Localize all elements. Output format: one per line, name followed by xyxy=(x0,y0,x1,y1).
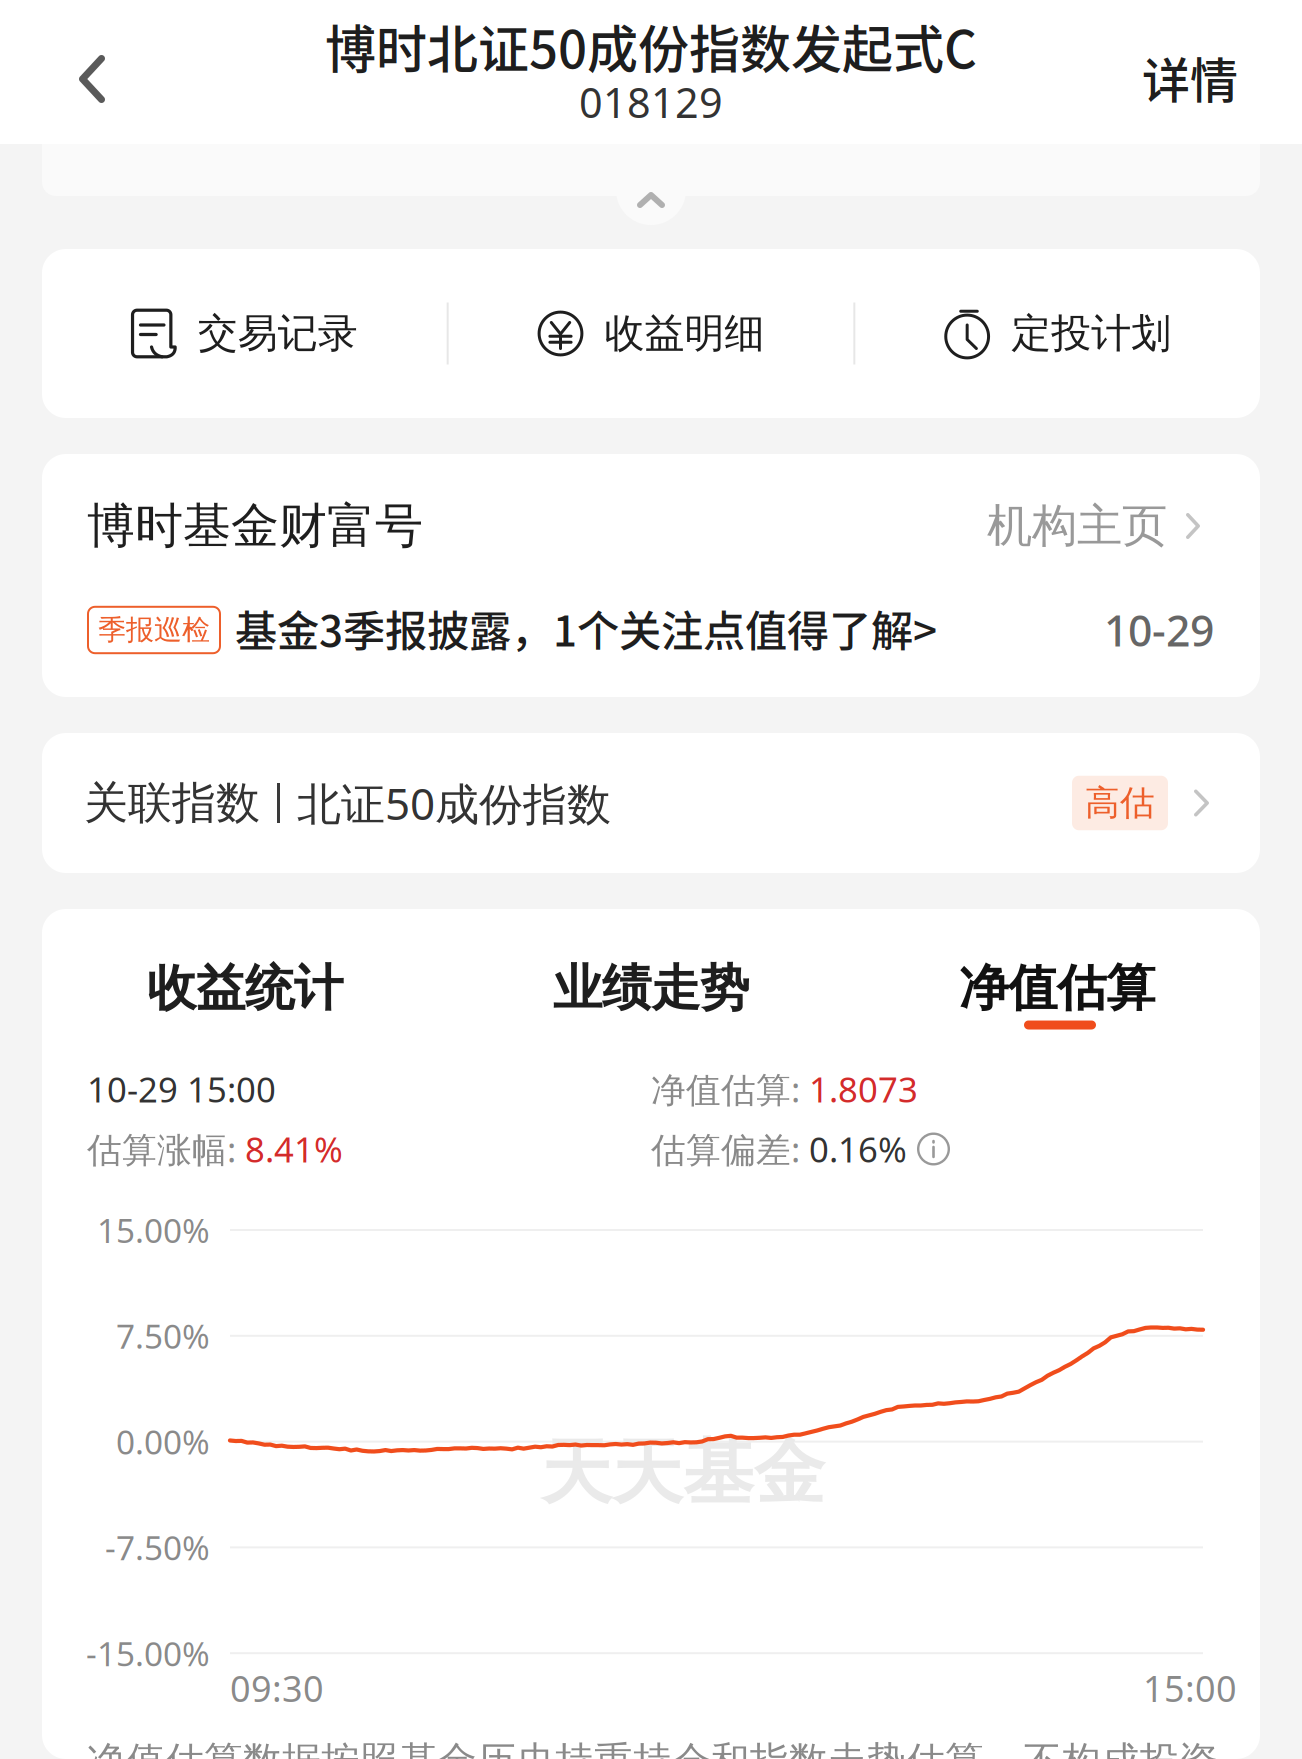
button[interactable]: 关联指数 xyxy=(42,733,1260,873)
staticText: 1.8073 xyxy=(809,1066,918,1112)
staticText: 估算偏差: xyxy=(651,1126,809,1172)
button[interactable]: 季报巡检 xyxy=(42,599,1260,661)
staticText: 018129 xyxy=(579,75,723,129)
staticText: 详情 xyxy=(1142,42,1238,112)
staticText: 净值估算: xyxy=(651,1066,809,1112)
staticText: 业绩走势 xyxy=(553,958,749,1019)
button[interactable]: 估算偏差说明 xyxy=(907,1122,960,1175)
staticText: 10-29 15:00 xyxy=(87,1066,276,1112)
staticText: 机构主页 xyxy=(987,498,1167,554)
button[interactable]: 详情 xyxy=(1102,12,1278,142)
staticText: -15.00% xyxy=(86,1631,210,1675)
staticText: 博时基金财富号 xyxy=(87,496,423,555)
staticText: 高估 xyxy=(1085,782,1155,824)
staticText: 8.41% xyxy=(245,1126,343,1172)
staticText: 估算涨幅: xyxy=(87,1126,245,1172)
staticText: 收益明细 xyxy=(604,309,764,358)
staticText: 净值估算 xyxy=(959,958,1155,1019)
staticText: 净值估算数据按照基金历史持重持仓和指数走势估算，不构成投资建议 xyxy=(87,1733,1260,1759)
staticText: 收益统计 xyxy=(147,958,343,1019)
staticText: 交易记录 xyxy=(198,309,358,358)
button[interactable]: 业绩走势 xyxy=(448,909,854,1068)
staticText: 关联指数 xyxy=(84,776,260,830)
staticText: -7.50% xyxy=(105,1525,210,1570)
staticText: 10-29 xyxy=(1104,602,1214,658)
staticText: 基金3季报披露，1个关注点值得了解> xyxy=(235,597,937,658)
button[interactable]: 机构主页 xyxy=(987,476,1200,576)
button[interactable]: 收益统计 xyxy=(42,909,448,1068)
staticText: 15.00% xyxy=(97,1208,210,1252)
staticText: 0.00% xyxy=(116,1419,210,1464)
button[interactable]: 返回 xyxy=(37,24,147,134)
staticText: 定投计划 xyxy=(1011,309,1171,358)
button[interactable]: 交易记录 xyxy=(42,249,447,418)
staticText: 09:30 xyxy=(230,1664,324,1712)
button[interactable]: 定投计划 xyxy=(855,249,1260,418)
staticText: 博时北证50成份指数发起式C xyxy=(325,9,977,83)
button[interactable]: 收起 xyxy=(616,155,686,225)
button[interactable]: 净值估算 xyxy=(854,909,1260,1068)
staticText: 北证50成份指数 xyxy=(297,774,611,832)
staticText: 7.50% xyxy=(116,1314,210,1358)
staticText: 季报巡检 xyxy=(98,613,210,647)
staticText: 天天基金 xyxy=(541,1430,825,1516)
button[interactable]: 收益明细 xyxy=(449,249,853,418)
staticText: 15:00 xyxy=(1143,1664,1237,1712)
staticText: 0.16% xyxy=(809,1126,907,1172)
